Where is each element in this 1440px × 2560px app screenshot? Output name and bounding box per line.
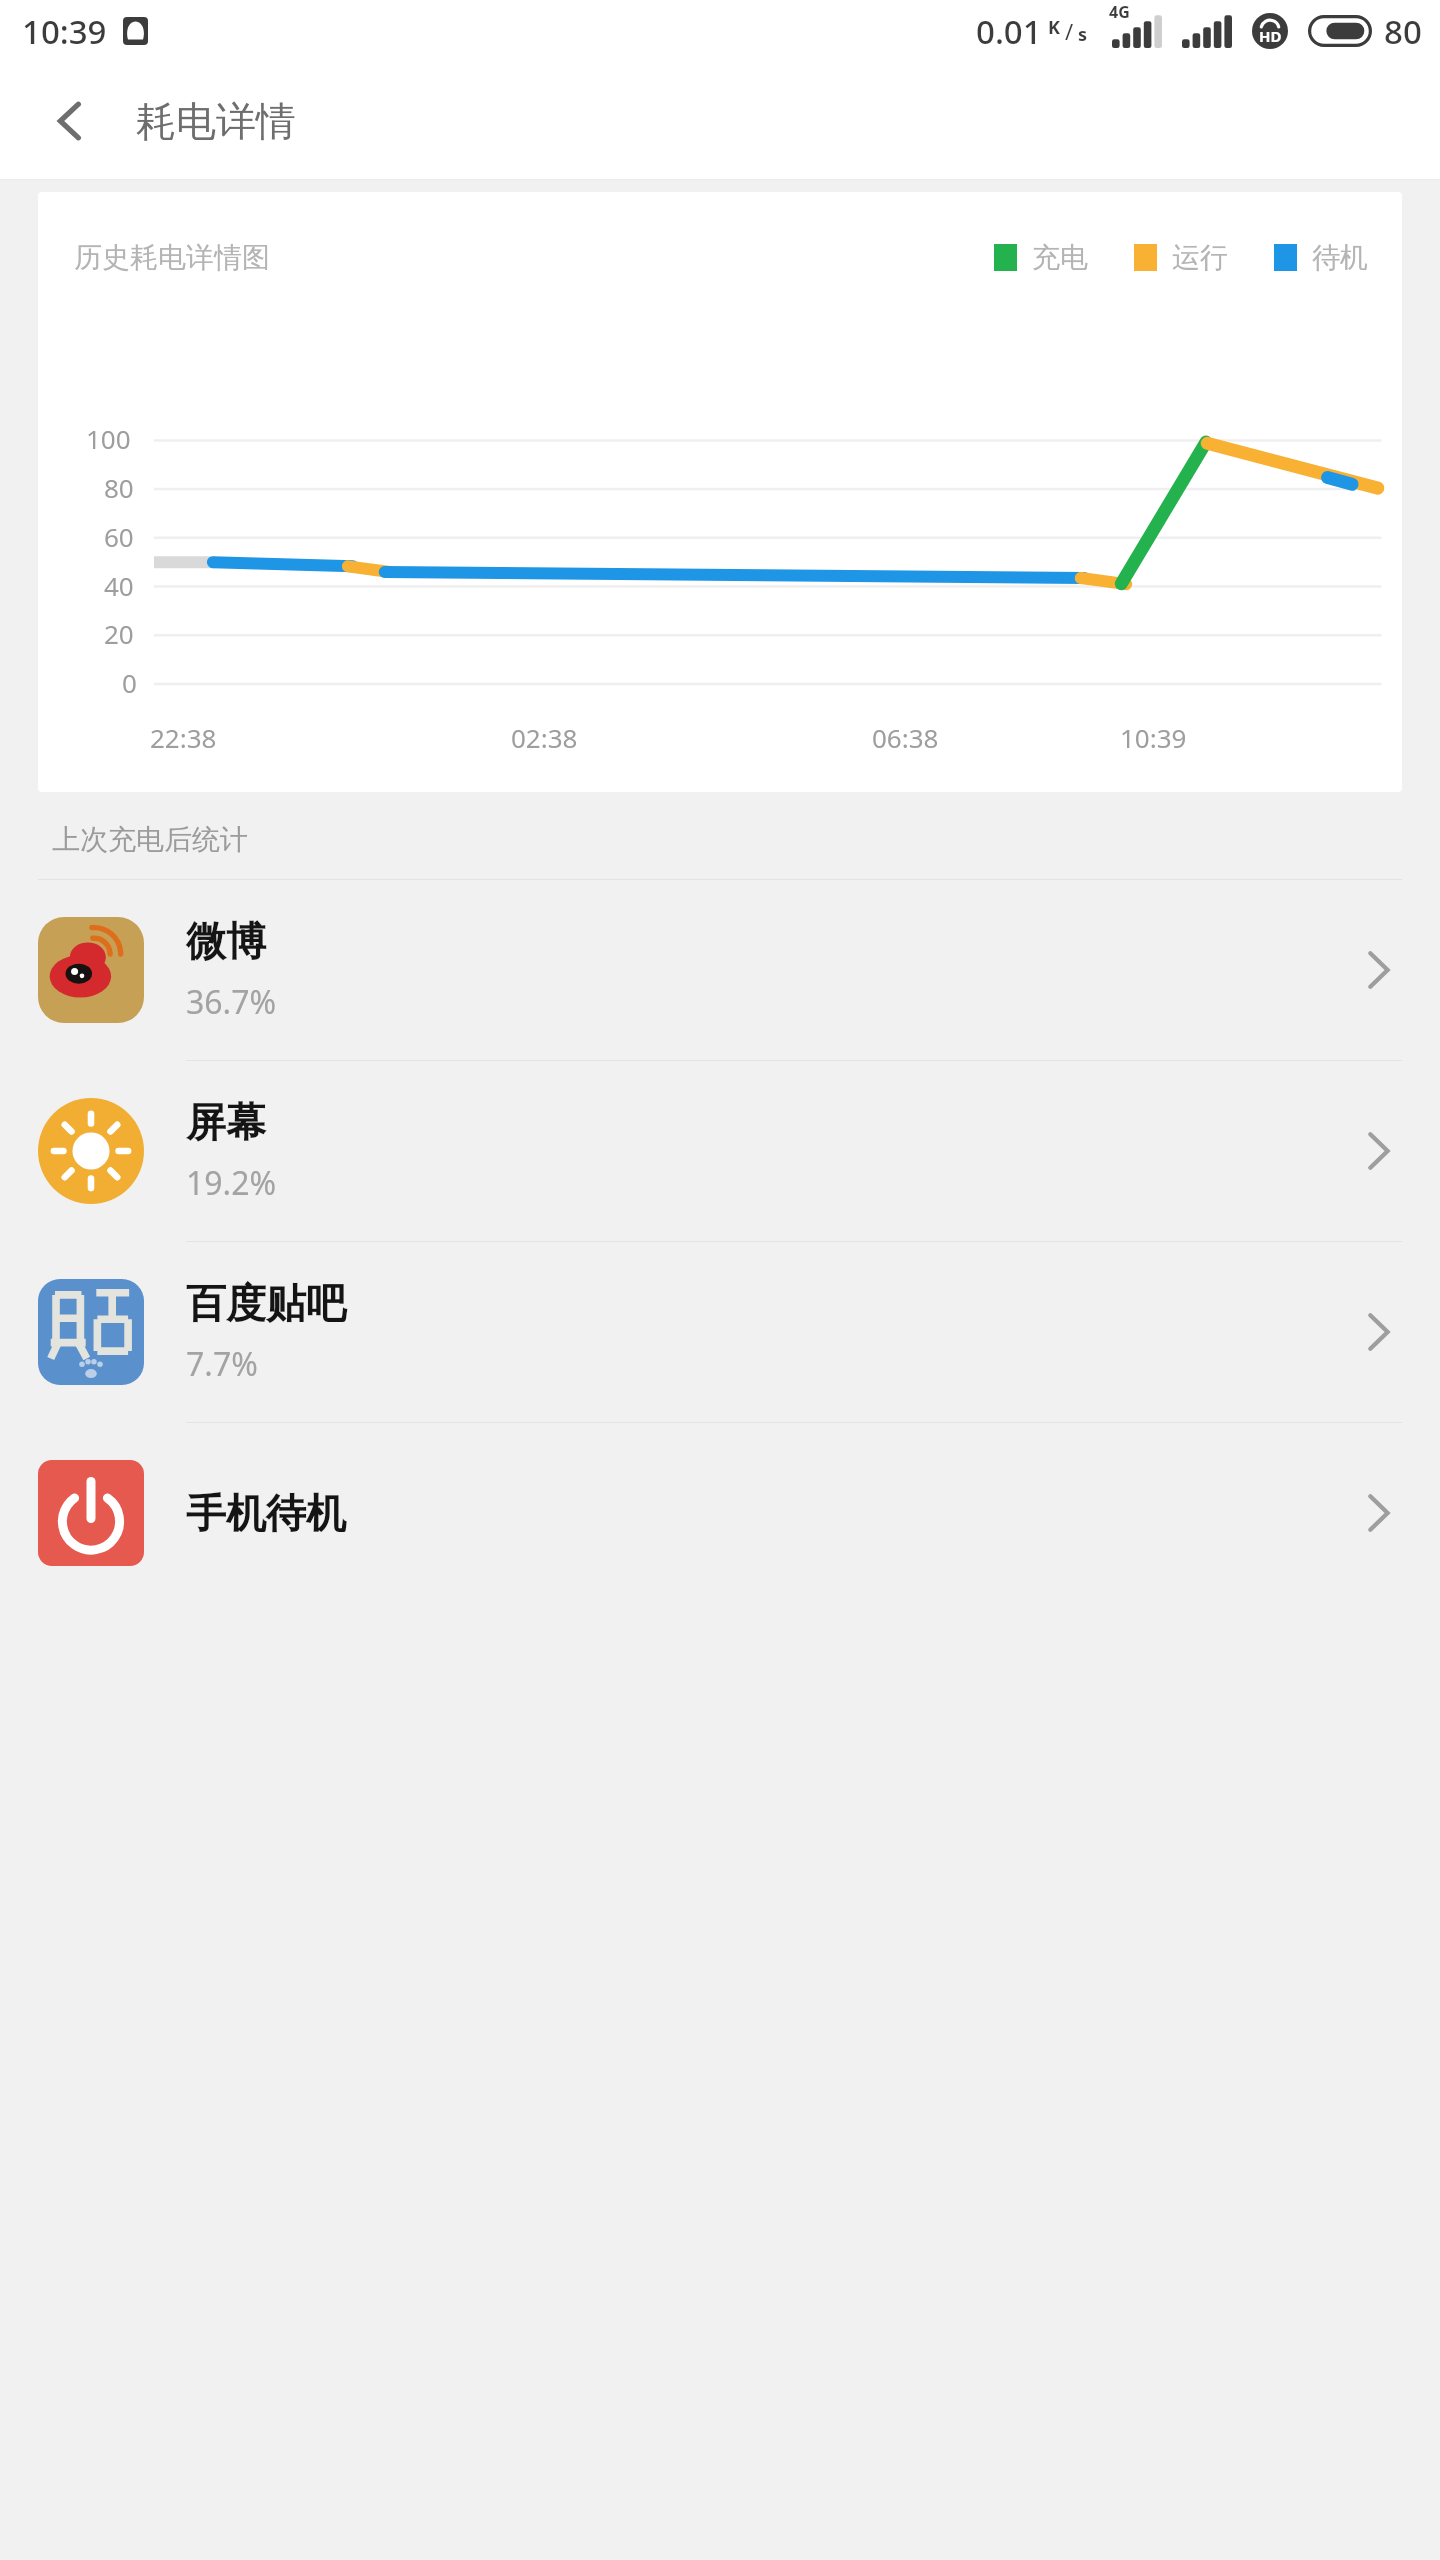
staticText: 充电 (1032, 240, 1088, 275)
staticText: 手机待机 (186, 1488, 346, 1538)
staticText: 耗电详情 (136, 96, 296, 146)
staticText: s (1078, 22, 1088, 47)
staticText: 历史耗电详情图 (74, 240, 270, 275)
button[interactable]: 微博 (0, 880, 1440, 1060)
staticText: 36.7% (186, 980, 277, 1024)
staticText: 80 (104, 470, 134, 505)
staticText: 100 (86, 421, 131, 456)
staticText: 10:39 (22, 9, 107, 54)
staticText: 4G (1109, 1, 1130, 23)
button[interactable]: 百度贴吧 (0, 1242, 1440, 1422)
staticText: 0 (122, 665, 137, 700)
staticText: 7.7% (186, 1342, 258, 1386)
staticText: 60 (104, 519, 134, 554)
button[interactable]: 返回 (20, 71, 120, 171)
staticText: 上次充电后统计 (52, 822, 248, 857)
staticText: 运行 (1172, 240, 1228, 275)
staticText: 0.01 (976, 9, 1042, 54)
staticText: 待机 (1312, 240, 1368, 275)
staticText: / (1065, 16, 1074, 46)
staticText: 百度贴吧 (186, 1278, 346, 1328)
staticText: 40 (104, 568, 134, 603)
staticText: 10:39 (1120, 720, 1187, 755)
staticText: 02:38 (511, 720, 578, 755)
staticText: HD (1259, 26, 1282, 46)
button[interactable]: 屏幕 (0, 1061, 1440, 1241)
button[interactable]: 手机待机 (0, 1423, 1440, 1603)
staticText: 微博 (186, 916, 266, 966)
staticText: K (1048, 15, 1060, 40)
staticText: 20 (104, 616, 134, 651)
staticText: 06:38 (872, 720, 939, 755)
staticText: 80 (1384, 9, 1422, 54)
staticText: 屏幕 (186, 1097, 266, 1147)
staticText: 19.2% (186, 1161, 277, 1205)
staticText: 22:38 (150, 720, 217, 755)
